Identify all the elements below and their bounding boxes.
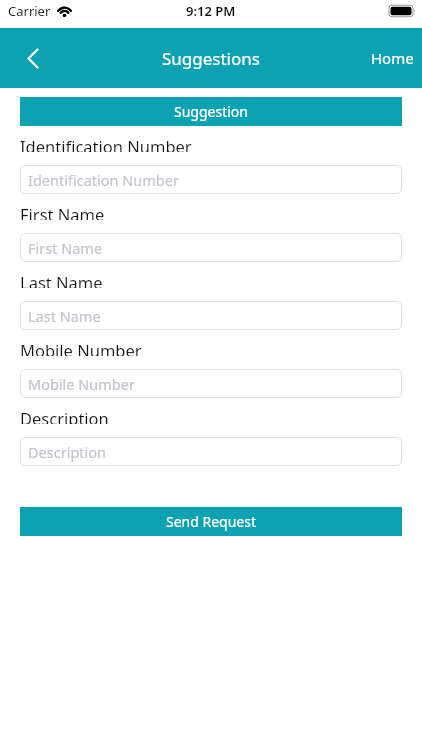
staticText: Mobile Number [28,374,135,394]
staticText: Identification Number [20,135,192,152]
button[interactable] [16,38,50,78]
staticText: Description [28,442,107,462]
button[interactable]: Mobile Number [20,369,402,398]
staticText: First Name [28,238,103,258]
staticText: First Name [20,203,105,220]
staticText: Identification Number [28,170,179,190]
staticText: Send Request [166,512,257,531]
staticText: Home [371,48,414,68]
staticText: Last Name [28,306,101,326]
button[interactable]: Suggestion [20,97,402,126]
button[interactable]: First Name [20,233,402,262]
staticText: Suggestions [162,47,260,70]
staticText: Mobile Number [20,339,142,356]
staticText: Carrier [8,2,51,20]
button[interactable]: Last Name [20,301,402,330]
staticText: 9:12 PM [186,2,236,20]
button[interactable]: Identification Number [20,165,402,194]
button[interactable]: Send Request [20,507,402,536]
staticText: Last Name [20,271,103,288]
button[interactable]: Home [371,48,414,68]
button[interactable]: Description [20,437,402,466]
staticText: Suggestion [174,102,248,121]
staticText: Description [20,407,109,424]
